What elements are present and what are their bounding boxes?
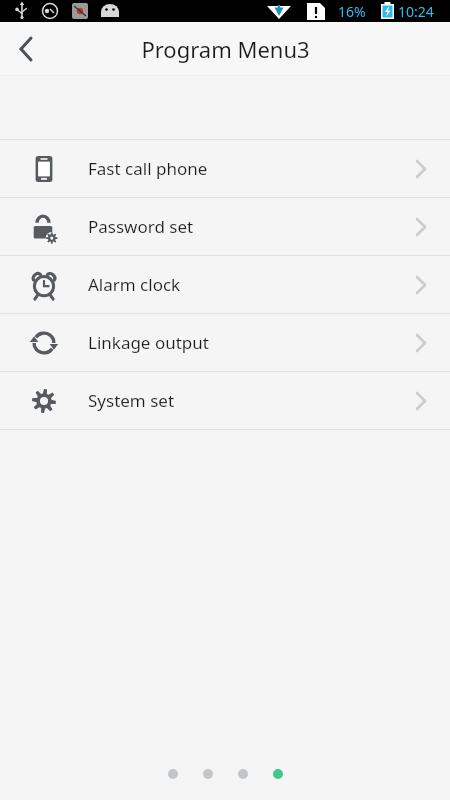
button[interactable]: Back (0, 22, 54, 76)
button[interactable]: Alarm clock (0, 256, 450, 313)
staticText: Fast call phone (88, 157, 208, 180)
staticText: 10:24 (398, 2, 434, 21)
button[interactable]: Linkage output (0, 314, 450, 371)
button[interactable]: Password set (0, 198, 450, 255)
staticText: Password set (88, 215, 194, 238)
staticText: Alarm clock (88, 273, 181, 296)
button[interactable]: Page 3 (238, 769, 248, 779)
button[interactable]: System set (0, 372, 450, 429)
staticText: Linkage output (88, 331, 209, 354)
button[interactable]: Page 1 (168, 769, 178, 779)
staticText: 16% (338, 2, 366, 21)
button[interactable]: Page 2 (203, 769, 213, 779)
button[interactable]: Fast call phone (0, 140, 450, 197)
button[interactable]: Page 4 (273, 769, 283, 779)
staticText: System set (88, 389, 175, 412)
staticText: Program Menu3 (141, 34, 310, 64)
